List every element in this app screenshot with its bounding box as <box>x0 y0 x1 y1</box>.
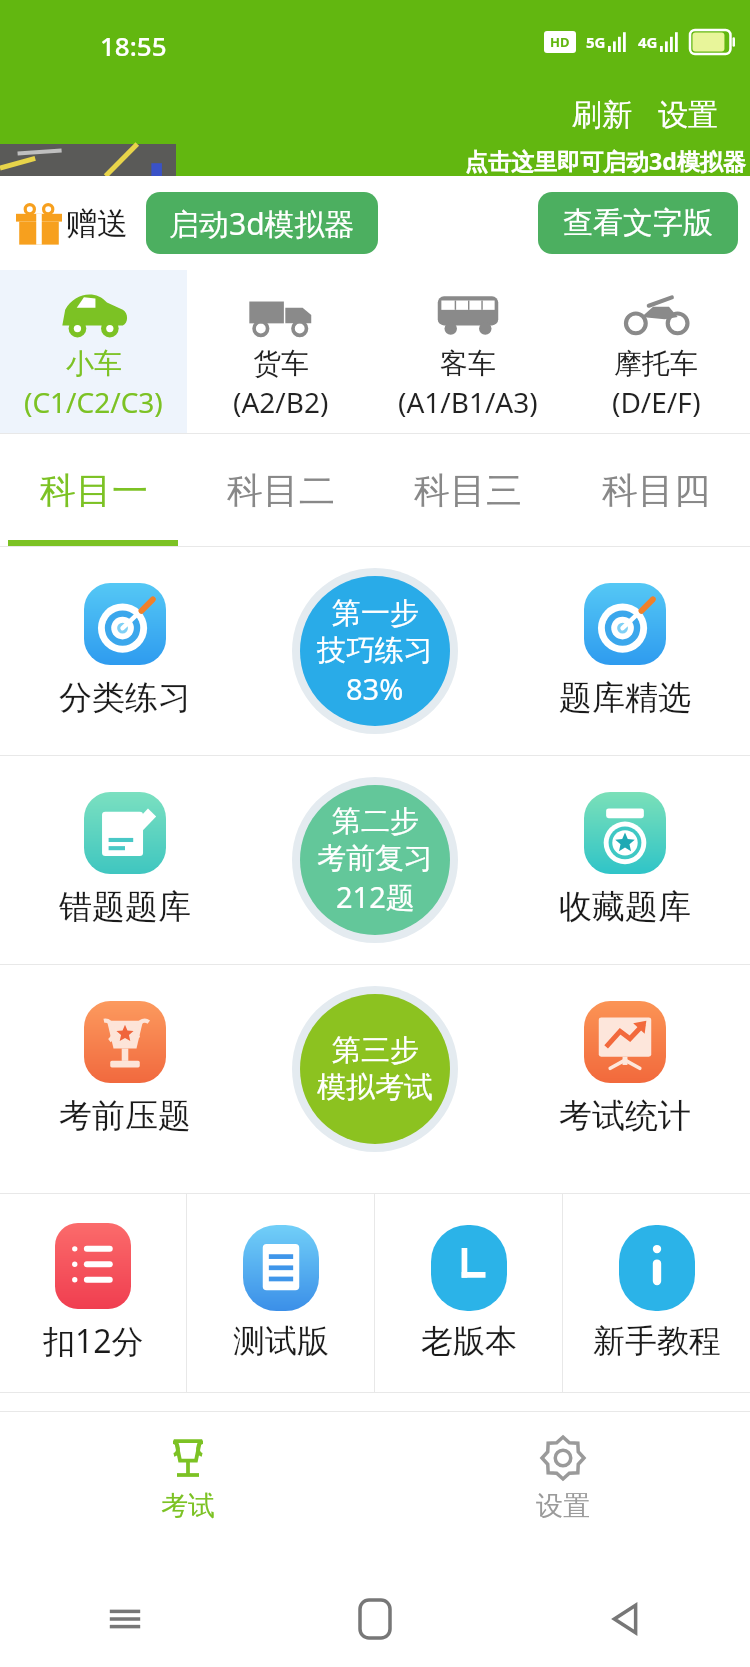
staticText: 错题题库 <box>59 886 191 928</box>
button[interactable]: 启动3d模拟器 <box>146 192 378 254</box>
staticText: (A1/B1/A3) <box>398 383 538 421</box>
staticText: 科目四 <box>602 468 710 513</box>
staticText: 考前压题 <box>59 1095 191 1137</box>
button[interactable]: 新手教程 <box>563 1193 750 1393</box>
staticText: 212题 <box>336 877 415 917</box>
staticText: 模拟考试 <box>317 1069 433 1106</box>
button[interactable]: 第三步 <box>300 994 450 1144</box>
staticText: 货车 <box>253 346 309 381</box>
button[interactable]: 设置 <box>375 1412 750 1544</box>
button[interactable]: 查看文字版 <box>538 192 738 254</box>
staticText: 赠送 <box>66 204 128 243</box>
button[interactable]: 考前压题 <box>0 965 250 1173</box>
staticText: 老版本 <box>421 1321 517 1361</box>
button[interactable]: 扣12分 <box>0 1193 186 1393</box>
button[interactable]: 第一步 <box>300 576 450 726</box>
button[interactable]: 测试版 <box>187 1193 374 1393</box>
staticText: (C1/C2/C3) <box>24 383 163 421</box>
staticText: 测试版 <box>233 1321 329 1361</box>
button[interactable]: 货车 <box>187 270 374 434</box>
staticText: 考前复习 <box>317 840 433 877</box>
button[interactable]: 题库精选 <box>500 547 750 755</box>
staticText: 18:55 <box>100 28 167 63</box>
button[interactable]: 小车 <box>0 270 187 434</box>
button[interactable]: 考试统计 <box>500 965 750 1173</box>
button[interactable]: 科目四 <box>562 434 750 546</box>
button[interactable]: 科目三 <box>374 434 562 546</box>
button[interactable]: 错题题库 <box>0 756 250 964</box>
staticText: 题库精选 <box>559 677 691 719</box>
staticText: 5G <box>586 32 606 52</box>
staticText: 扣12分 <box>43 1319 144 1363</box>
staticText: 点击这里即可启动3d模拟器 <box>465 145 746 176</box>
button[interactable]: 摩托车 <box>562 270 750 434</box>
staticText: 查看文字版 <box>563 204 713 242</box>
staticText: 设置 <box>658 96 718 134</box>
staticText: 第三步 <box>332 1032 419 1069</box>
staticText: (D/E/F) <box>612 383 701 421</box>
button[interactable]: 赠送 <box>12 196 132 250</box>
staticText: 科目一 <box>40 468 148 513</box>
staticText: 4G <box>638 32 658 52</box>
staticText: 考试 <box>161 1489 215 1523</box>
button[interactable]: 设置 <box>652 92 724 138</box>
staticText: 小车 <box>66 346 122 381</box>
button[interactable]: Recents <box>0 1571 250 1667</box>
staticText: (A2/B2) <box>233 383 329 421</box>
staticText: 科目二 <box>227 468 335 513</box>
button[interactable]: 分类练习 <box>0 547 250 755</box>
staticText: 第一步 <box>332 595 419 632</box>
staticText: 设置 <box>536 1489 590 1523</box>
staticText: 考试统计 <box>559 1095 691 1137</box>
staticText: 第二步 <box>332 803 419 840</box>
staticText: 科目三 <box>414 468 522 513</box>
button[interactable]: Home <box>250 1571 500 1667</box>
staticText: 83% <box>346 669 404 708</box>
button[interactable]: 刷新 <box>566 92 638 138</box>
staticText: 刷新 <box>572 96 632 134</box>
button[interactable]: 第二步 <box>300 785 450 935</box>
staticText: 分类练习 <box>59 677 191 719</box>
staticText: 收藏题库 <box>559 886 691 928</box>
button[interactable]: 收藏题库 <box>500 756 750 964</box>
button[interactable]: 老版本 <box>375 1193 562 1393</box>
staticText: 客车 <box>440 346 496 381</box>
button[interactable]: 客车 <box>374 270 562 434</box>
staticText: 新手教程 <box>593 1321 721 1361</box>
button[interactable]: Back <box>500 1571 750 1667</box>
staticText: HD <box>550 33 570 51</box>
staticText: 技巧练习 <box>317 632 433 669</box>
button[interactable]: 考试 <box>0 1412 375 1544</box>
button[interactable]: 科目一 <box>0 434 187 546</box>
button[interactable]: 科目二 <box>187 434 374 546</box>
staticText: 摩托车 <box>614 346 698 381</box>
staticText: 启动3d模拟器 <box>169 203 355 244</box>
